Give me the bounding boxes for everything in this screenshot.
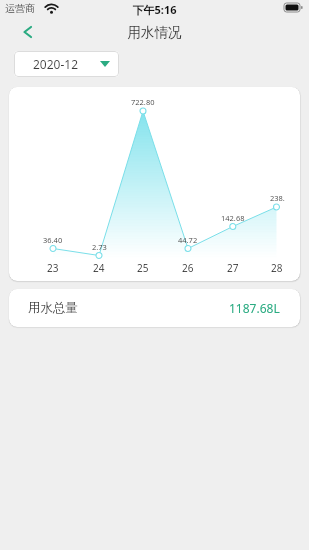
staticText: 722.80 bbox=[131, 97, 155, 107]
staticText: 238. bbox=[270, 193, 285, 203]
staticText: 用水情况 bbox=[0, 24, 309, 41]
button[interactable]: 用水总量 bbox=[9, 289, 300, 327]
staticText: 142.68 bbox=[221, 213, 245, 223]
staticText: 25 bbox=[137, 261, 149, 275]
button[interactable] bbox=[14, 18, 40, 46]
staticText: 下午5:16 bbox=[0, 2, 309, 17]
staticText: 用水总量 bbox=[28, 300, 78, 316]
staticText: 运营商 bbox=[5, 2, 35, 15]
button[interactable]: 2020-12 bbox=[14, 51, 119, 77]
staticText: 27 bbox=[227, 261, 239, 275]
staticText: 1187.68L bbox=[229, 300, 280, 316]
staticText: 36.40 bbox=[43, 235, 63, 245]
staticText: 23 bbox=[47, 261, 59, 275]
staticText: 2.73 bbox=[92, 242, 107, 252]
staticText: 26 bbox=[182, 261, 194, 275]
staticText: 44.72 bbox=[178, 235, 198, 245]
staticText: 24 bbox=[93, 261, 105, 275]
staticText: 2020-12 bbox=[33, 56, 79, 72]
staticText: 28 bbox=[271, 261, 283, 275]
